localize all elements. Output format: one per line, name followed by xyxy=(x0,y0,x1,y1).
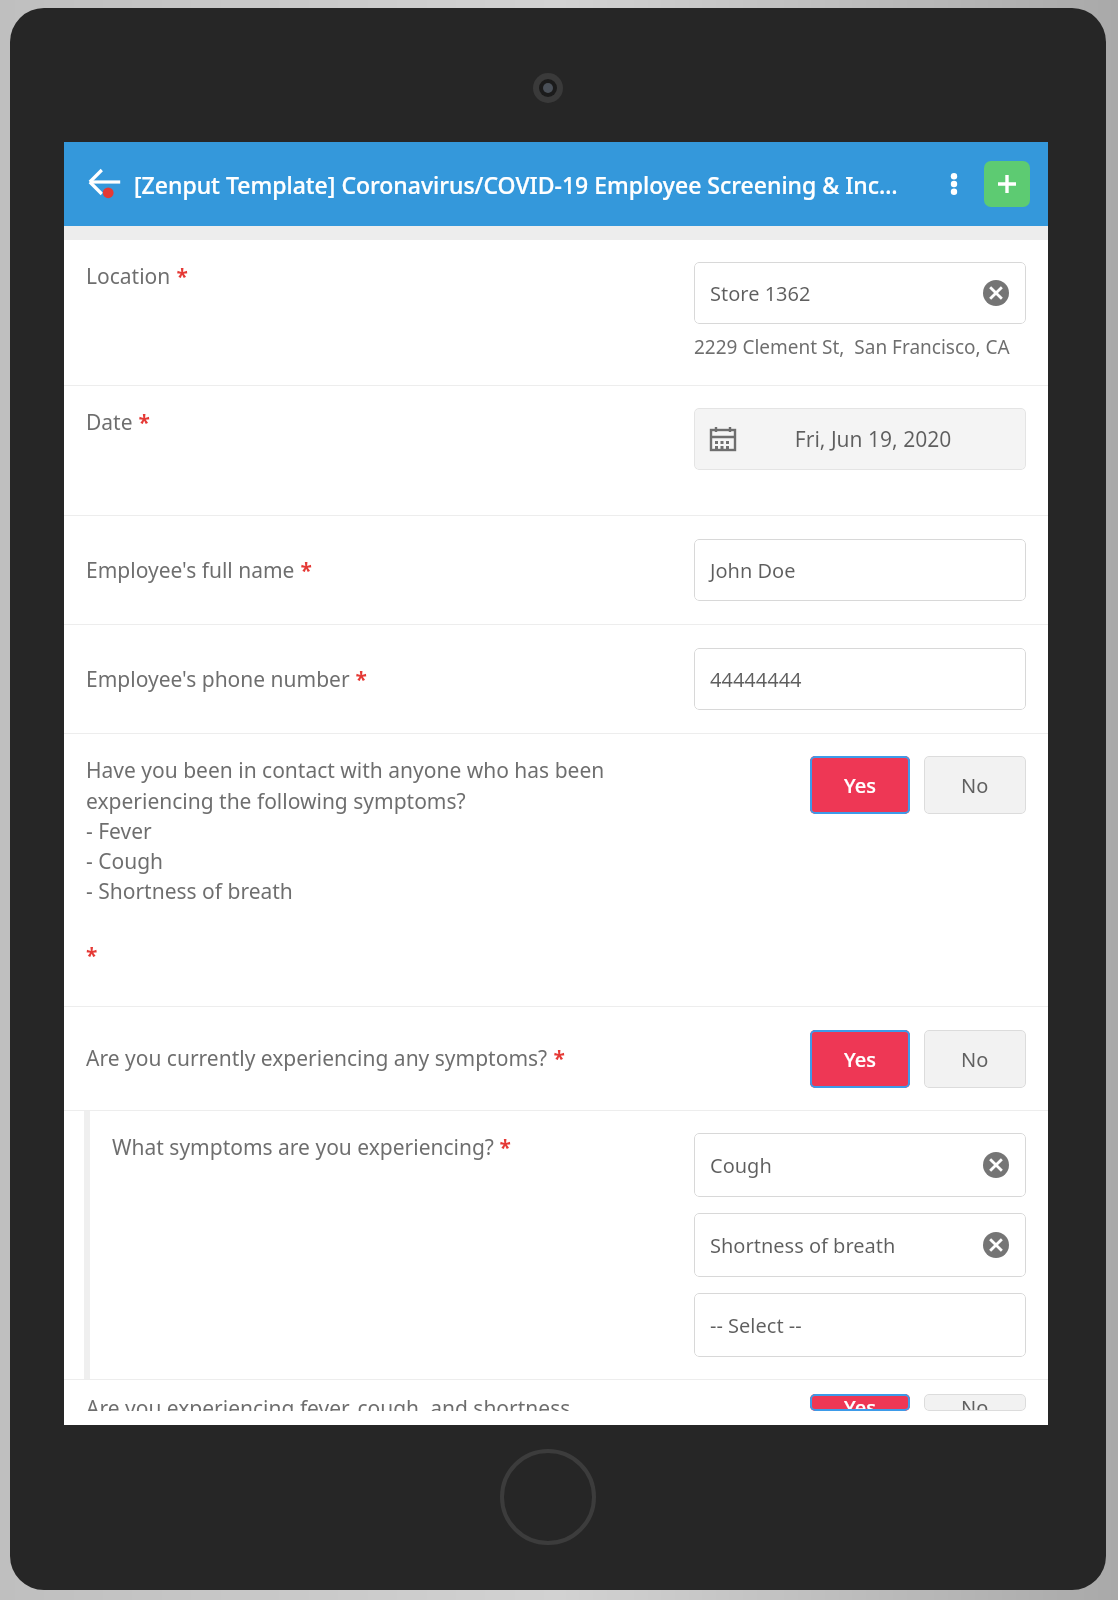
staticText: [Zenput Template] Coronavirus/COVID-19 E… xyxy=(134,169,922,200)
staticText: No xyxy=(961,1046,989,1073)
button[interactable]: More options xyxy=(932,162,976,206)
staticText: Are you experiencing fever, cough, and s… xyxy=(86,1394,586,1411)
staticText: * xyxy=(295,556,312,585)
staticText: Location xyxy=(86,262,171,291)
button[interactable]: Back xyxy=(82,161,128,207)
button[interactable]: Yes xyxy=(810,756,910,814)
button[interactable]: Yes xyxy=(810,1394,910,1411)
button[interactable]: Clear xyxy=(982,1151,1010,1179)
staticText: What symptoms are you experiencing? xyxy=(112,1133,494,1162)
staticText: Have you been in contact with anyone who… xyxy=(86,756,606,905)
button[interactable]: Cough xyxy=(694,1133,1026,1197)
staticText: Store 1362 xyxy=(710,280,982,307)
button[interactable]: Are you currently experiencing any sympt… xyxy=(64,1007,1048,1110)
button[interactable]: Add xyxy=(984,161,1030,207)
staticText: Yes xyxy=(844,1394,876,1411)
staticText: * xyxy=(350,665,367,694)
staticText: Shortness of breath xyxy=(710,1232,982,1259)
staticText: Yes xyxy=(844,772,876,799)
button[interactable]: No xyxy=(924,756,1026,814)
staticText: Cough xyxy=(710,1152,982,1179)
button[interactable]: John Doe xyxy=(694,539,1026,601)
staticText: No xyxy=(961,772,989,799)
button[interactable]: Are you experiencing fever, cough, and s… xyxy=(64,1380,1048,1425)
button[interactable]: No xyxy=(924,1394,1026,1411)
staticText: * xyxy=(133,408,150,437)
staticText: 2229 Clement St, San Francisco, CA xyxy=(694,334,1026,360)
staticText: -- Select -- xyxy=(710,1312,1010,1339)
staticText: * xyxy=(494,1133,511,1162)
staticText: No xyxy=(961,1394,989,1411)
staticText: John Doe xyxy=(710,557,1010,584)
button[interactable]: 44444444 xyxy=(694,648,1026,710)
staticText: Employee's phone number xyxy=(86,665,350,694)
button[interactable]: Store 1362 xyxy=(694,262,1026,324)
staticText: Yes xyxy=(844,1046,876,1073)
staticText: Are you currently experiencing any sympt… xyxy=(86,1044,548,1073)
staticText: * xyxy=(548,1044,565,1073)
staticText: * xyxy=(171,262,188,291)
staticText: Employee's full name xyxy=(86,556,295,585)
staticText: Fri, Jun 19, 2020 xyxy=(736,425,1010,454)
button[interactable]: Clear xyxy=(982,279,1010,307)
button[interactable]: Location xyxy=(64,240,1048,385)
button[interactable]: Shortness of breath xyxy=(694,1213,1026,1277)
button[interactable]: Clear xyxy=(982,1231,1010,1259)
staticText: Date xyxy=(86,408,133,437)
button[interactable]: Yes xyxy=(810,1030,910,1088)
button[interactable]: Employee's full name xyxy=(64,516,1048,624)
button[interactable]: Have you been in contact with anyone who… xyxy=(64,734,1048,1006)
staticText: 44444444 xyxy=(710,666,1010,693)
button[interactable]: -- Select -- xyxy=(694,1293,1026,1357)
staticText: * xyxy=(86,941,98,970)
button[interactable]: Employee's phone number xyxy=(64,625,1048,733)
button[interactable]: Date xyxy=(64,386,1048,515)
button[interactable]: No xyxy=(924,1030,1026,1088)
button[interactable]: What symptoms are you experiencing? xyxy=(90,1111,1048,1379)
